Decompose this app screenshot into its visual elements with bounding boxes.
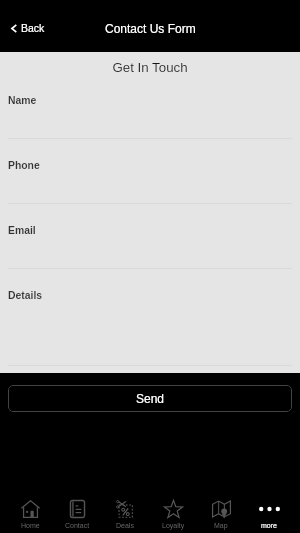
staticText: Details: [8, 290, 43, 302]
button[interactable]: Map: [197, 488, 245, 533]
staticText: Get In Touch: [0, 60, 300, 75]
button[interactable]: Details: [0, 269, 300, 366]
button[interactable]: Deals: [101, 488, 149, 533]
button[interactable]: Name: [0, 74, 300, 139]
button[interactable]: Loyalty: [149, 488, 197, 533]
staticText: Send: [136, 392, 165, 405]
button[interactable]: Send: [8, 385, 292, 412]
staticText: more: [261, 522, 277, 530]
staticText: Contact: [65, 522, 90, 530]
staticText: Map: [214, 522, 228, 530]
staticText: Back: [21, 22, 45, 34]
button[interactable]: Email: [0, 204, 300, 269]
staticText: Loyalty: [162, 522, 185, 530]
staticText: Phone: [8, 160, 40, 172]
staticText: Home: [21, 522, 40, 530]
button[interactable]: more: [245, 488, 293, 533]
button[interactable]: Back: [7, 16, 49, 40]
staticText: Deals: [116, 522, 134, 530]
staticText: Contact Us Form: [105, 22, 196, 35]
button[interactable]: Contact: [54, 488, 101, 533]
staticText: Email: [8, 225, 36, 237]
button[interactable]: Home: [7, 488, 54, 533]
button[interactable]: Phone: [0, 139, 300, 204]
staticText: Name: [8, 95, 37, 107]
